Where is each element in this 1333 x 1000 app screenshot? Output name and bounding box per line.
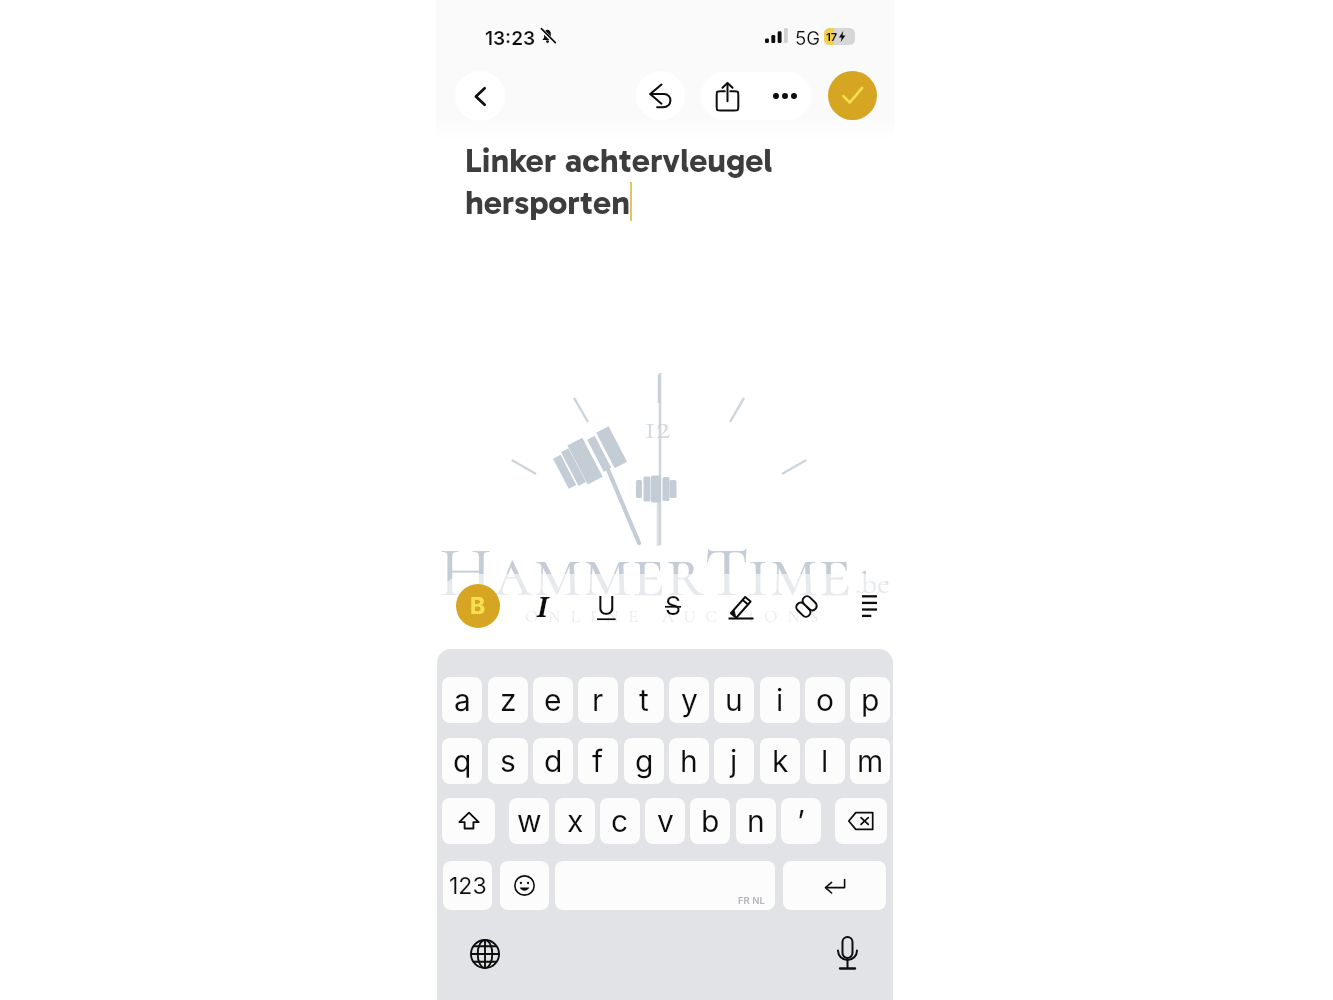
staticText: h [680, 743, 698, 779]
button[interactable]: Dictate [826, 932, 868, 974]
button[interactable]: i [760, 677, 800, 723]
staticText: i [776, 682, 784, 718]
button[interactable]: U [584, 584, 628, 628]
staticText: .be [855, 564, 890, 602]
button[interactable]: w [509, 798, 549, 844]
staticText: Linker achtervleugel hersporten [465, 140, 773, 222]
button[interactable]: Shift [442, 798, 495, 844]
staticText: FR NL [738, 895, 765, 906]
staticText: d [544, 743, 563, 779]
staticText: x [567, 803, 584, 839]
staticText: ONLINE AUCTIONS [525, 606, 829, 627]
staticText: m [857, 743, 884, 779]
staticText: ’ [797, 803, 805, 839]
button[interactable]: Numbers [443, 861, 492, 910]
staticText: s [500, 743, 516, 779]
button[interactable]: z [488, 677, 528, 723]
button[interactable]: Backspace [835, 798, 887, 844]
staticText: c [611, 803, 629, 839]
button[interactable]: I [520, 584, 564, 628]
button[interactable]: t [624, 677, 664, 723]
button[interactable]: o [805, 677, 845, 723]
button[interactable]: u [714, 677, 754, 723]
staticText: S [665, 591, 682, 621]
button[interactable]: b [690, 798, 730, 844]
other: Highlight [728, 594, 754, 619]
staticText: n [747, 803, 765, 839]
other: Insert link [793, 593, 820, 620]
button[interactable]: ’ [781, 798, 821, 844]
staticText: p [861, 682, 880, 718]
button[interactable]: e [533, 677, 573, 723]
staticText: l [821, 743, 829, 779]
staticText: B [470, 592, 486, 620]
staticText: q [453, 743, 472, 779]
button[interactable]: Done [828, 71, 877, 120]
button[interactable]: Return [783, 861, 886, 910]
staticText: t [639, 682, 649, 718]
staticText: u [725, 682, 743, 718]
staticText: 17 [826, 30, 838, 43]
button[interactable]: Share [701, 72, 753, 120]
staticText: z [500, 682, 517, 718]
staticText: 123 [449, 872, 487, 900]
button[interactable]: j [714, 738, 754, 784]
button[interactable]: n [736, 798, 776, 844]
staticText: g [635, 743, 654, 779]
button[interactable]: B [456, 584, 500, 628]
button[interactable]: Highlight [719, 584, 763, 628]
button[interactable]: S [651, 584, 695, 628]
staticText: y [681, 682, 698, 718]
staticText: r [592, 682, 604, 718]
staticText: 12 [644, 405, 671, 449]
button[interactable]: Undo [636, 71, 685, 120]
staticText: w [517, 803, 542, 839]
button[interactable]: h [669, 738, 709, 784]
button[interactable]: x [555, 798, 595, 844]
button[interactable]: Insert link [784, 584, 828, 628]
staticText: k [772, 743, 789, 779]
button[interactable]: y [669, 677, 709, 723]
staticText: e [544, 682, 562, 718]
staticText: o [816, 682, 834, 718]
button[interactable]: a [442, 677, 482, 723]
staticText: v [657, 803, 674, 839]
button[interactable]: l [805, 738, 845, 784]
button[interactable]: s [488, 738, 528, 784]
staticText: U [597, 591, 616, 621]
button[interactable]: More options [758, 72, 811, 120]
button[interactable]: q [442, 738, 482, 784]
button[interactable]: Space [555, 861, 775, 910]
staticText: I [537, 588, 548, 625]
staticText: a [454, 682, 471, 718]
staticText: 13:23 [485, 27, 536, 50]
button[interactable]: k [760, 738, 800, 784]
staticText: 5G [795, 27, 821, 49]
button[interactable]: Emoji [500, 861, 549, 910]
button[interactable]: Change keyboard [464, 933, 506, 975]
button[interactable]: p [850, 677, 890, 723]
button[interactable]: r [578, 677, 618, 723]
button[interactable]: v [645, 798, 685, 844]
staticText: b [701, 803, 720, 839]
button[interactable]: List format [847, 584, 891, 628]
staticText: HammerTime [439, 530, 853, 615]
staticText: j [730, 743, 738, 779]
button[interactable]: Back [455, 71, 505, 121]
other: List format [862, 595, 877, 617]
button[interactable]: d [533, 738, 573, 784]
button[interactable]: m [850, 738, 890, 784]
button[interactable]: c [600, 798, 640, 844]
button[interactable]: f [578, 738, 618, 784]
staticText: f [592, 743, 604, 779]
button[interactable]: g [624, 738, 664, 784]
